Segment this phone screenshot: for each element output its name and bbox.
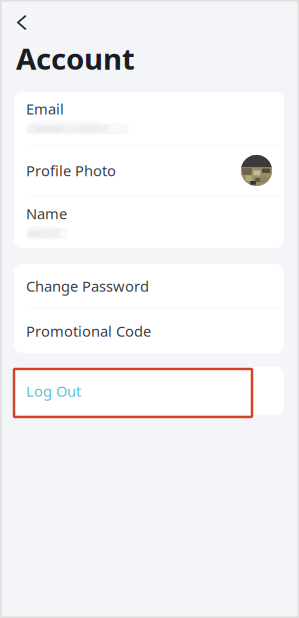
button[interactable]: Name [14, 196, 284, 248]
button[interactable]: Log Out [14, 367, 284, 415]
staticText: Profile Photo [26, 161, 116, 180]
button[interactable]: Email [14, 92, 284, 145]
staticText: Email [26, 99, 64, 118]
staticText: Name [26, 204, 67, 223]
button[interactable]: Profile Photo [14, 146, 284, 195]
button[interactable]: Back [0, 0, 41, 36]
button[interactable]: Change Password [14, 264, 284, 308]
staticText: Change Password [26, 276, 149, 296]
button[interactable]: Promotional Code [14, 309, 284, 353]
staticText: Account [16, 39, 135, 78]
staticText: Promotional Code [26, 321, 151, 341]
staticText: Log Out [26, 381, 81, 401]
